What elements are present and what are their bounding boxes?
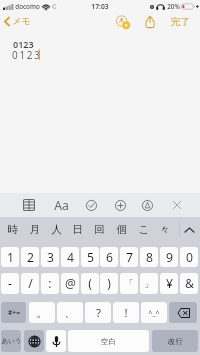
staticText: 20% (167, 2, 180, 11)
button[interactable]: 9 (160, 247, 178, 267)
button[interactable]: 空白 (68, 330, 149, 352)
button[interactable]: 」 (140, 273, 158, 294)
button[interactable]: 改行 (152, 330, 198, 352)
staticText: メモ (12, 16, 31, 27)
staticText: 7 (126, 249, 133, 266)
staticText: ^_^ (148, 308, 160, 318)
staticText: 1 (7, 249, 14, 266)
staticText: ? (96, 305, 101, 321)
button[interactable]: 2 (21, 247, 39, 267)
staticText: @ (65, 275, 76, 292)
staticText: 17:03 (91, 2, 109, 11)
button[interactable]: 月 (23, 217, 45, 242)
staticText: 個 (116, 223, 127, 236)
button[interactable]: Switch keyboard (24, 330, 44, 352)
button[interactable]: 0 (180, 247, 198, 267)
button[interactable]: 「 (120, 273, 138, 294)
button[interactable]: Dictation (46, 330, 66, 352)
staticText: 0123 (13, 38, 34, 50)
staticText: 完了 (171, 16, 190, 28)
button[interactable]: Table (18, 193, 40, 217)
button[interactable]: : (41, 273, 59, 294)
button[interactable]: Share (141, 13, 158, 30)
button[interactable]: Checklist (80, 193, 102, 217)
staticText: 2 (27, 249, 34, 266)
staticText: 0 (186, 249, 193, 266)
button[interactable]: ? (85, 302, 111, 323)
staticText: 8 (146, 249, 153, 266)
button[interactable]: - (1, 273, 19, 294)
staticText: 6 (106, 249, 113, 266)
staticText: あいう (1, 337, 21, 345)
button[interactable]: 個 (110, 217, 132, 242)
button[interactable]: @ (61, 273, 79, 294)
button[interactable]: 3 (41, 247, 59, 267)
button[interactable]: Add attachment (109, 193, 131, 217)
staticText: #+= (8, 308, 20, 317)
button[interactable]: 8 (140, 247, 158, 267)
staticText: 時 (7, 223, 18, 236)
staticText: ) (107, 275, 111, 292)
button[interactable]: Delete (169, 302, 197, 323)
staticText: 5 (87, 249, 94, 266)
staticText: 日 (72, 223, 83, 236)
button[interactable]: ! (113, 302, 139, 323)
button[interactable]: / (21, 273, 39, 294)
button[interactable]: 。 (29, 302, 55, 323)
button[interactable]: ^_^ (141, 302, 167, 323)
staticText: 、 (64, 306, 76, 320)
button[interactable]: こ (132, 217, 154, 242)
staticText: & (185, 275, 194, 292)
button[interactable]: 、 (57, 302, 83, 323)
staticText: 4 (67, 249, 74, 266)
button[interactable]: & (180, 273, 198, 294)
button[interactable]: ( (81, 273, 99, 294)
staticText: 月 (29, 223, 40, 236)
staticText: 回 (94, 223, 105, 236)
staticText: 改行 (168, 337, 183, 346)
button[interactable]: 々 (153, 217, 175, 242)
staticText: 々 (159, 223, 170, 236)
staticText: - (8, 275, 12, 292)
staticText: 人 (51, 223, 62, 236)
button[interactable]: 4 (61, 247, 79, 267)
button[interactable]: 1 (1, 247, 19, 267)
staticText: Aa (54, 197, 69, 214)
staticText: 「 (124, 278, 134, 290)
staticText: 3 (47, 249, 54, 266)
button[interactable]: 6 (100, 247, 118, 267)
button[interactable]: ) (100, 273, 118, 294)
button[interactable]: Input mode (1, 330, 21, 352)
staticText: こ (138, 223, 149, 236)
staticText: / (28, 275, 33, 292)
staticText: 9 (166, 249, 173, 266)
staticText: ! (124, 305, 128, 321)
button[interactable]: 人 (45, 217, 67, 242)
button[interactable]: Text format (50, 193, 72, 217)
staticText: ¥ (166, 275, 173, 292)
button[interactable]: ¥ (160, 273, 178, 294)
button[interactable]: Hide keyboard (166, 193, 188, 217)
staticText: 空白 (101, 337, 116, 346)
button[interactable]: 回 (88, 217, 110, 242)
button[interactable]: 7 (120, 247, 138, 267)
staticText: 」 (144, 278, 154, 290)
button[interactable]: Collaborate (114, 13, 132, 30)
button[interactable]: Symbols (1, 302, 26, 323)
staticText: 。 (36, 306, 48, 320)
button[interactable]: 時 (1, 217, 23, 242)
staticText: 0 1 2 3 (12, 48, 40, 62)
button[interactable]: More suggestions (179, 217, 200, 242)
button[interactable]: Markup (136, 193, 158, 217)
button[interactable]: 5 (81, 247, 99, 267)
button[interactable]: 日 (66, 217, 88, 242)
staticText: ( (88, 275, 92, 292)
button[interactable]: 完了 (166, 13, 194, 30)
staticText: : (48, 275, 52, 292)
button[interactable]: メモ (4, 16, 33, 27)
staticText: docomo (15, 2, 40, 11)
